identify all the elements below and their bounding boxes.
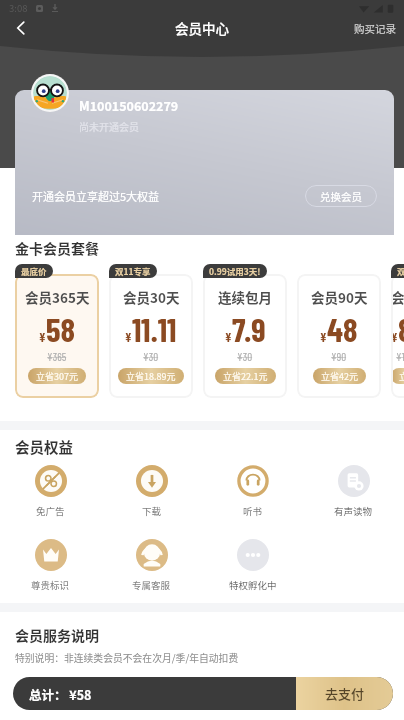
staticText: 会员180天 [391, 287, 404, 307]
button[interactable]: 听书 [202, 465, 303, 518]
staticText: 尊贵标识 [31, 578, 70, 592]
button[interactable]: 会员30天 [109, 274, 193, 398]
staticText: ¥365 [47, 350, 67, 363]
staticText: 立省307元 [36, 370, 78, 383]
staticText: ¥ [320, 329, 327, 344]
staticText: 去支付 [325, 684, 365, 703]
button[interactable]: 会员90天 [297, 274, 381, 398]
staticText: ¥30 [237, 350, 253, 363]
staticText: 听书 [243, 504, 263, 518]
staticText: ¥ [39, 329, 46, 344]
staticText: 会员30天 [123, 287, 180, 307]
staticText: ¥30 [143, 350, 159, 363]
staticText: 免广告 [36, 504, 65, 518]
staticText: 会员90天 [311, 287, 368, 307]
button[interactable]: 会员180天 [391, 274, 404, 398]
staticText: 3:08 [9, 1, 28, 15]
staticText: 立省18.89元 [126, 370, 176, 383]
staticText: 专属客服 [132, 578, 171, 592]
button[interactable]: 购买记录 [343, 15, 404, 42]
staticText: M100150602279 [79, 96, 179, 114]
staticText: 会员服务说明 [15, 625, 99, 645]
button[interactable]: 尊贵标识 [0, 539, 101, 592]
button[interactable]: 专属客服 [101, 539, 202, 592]
staticText: ¥ [391, 329, 398, 344]
button[interactable]: 下载 [101, 465, 202, 518]
staticText: 下载 [142, 504, 162, 518]
staticText: ¥ [125, 329, 132, 344]
staticText: 会员权益 [15, 436, 73, 457]
staticText: 开通会员立享超过5大权益 [32, 188, 160, 204]
button[interactable]: 连续包月 [203, 274, 287, 398]
staticText: 立省22.1元 [223, 370, 268, 383]
staticText: 总计： ¥58 [29, 685, 92, 703]
staticText: 双11专享 [397, 265, 404, 277]
staticText: 立省92元 [399, 370, 404, 383]
button[interactable]: Back [5, 12, 37, 44]
button[interactable]: 特权孵化中 [202, 539, 303, 592]
staticText: 双11专享 [115, 265, 151, 277]
button[interactable]: 有声读物 [303, 465, 404, 518]
staticText: 会员中心 [175, 18, 229, 38]
staticText: 金卡会员套餐 [15, 238, 99, 258]
button[interactable]: 免广告 [0, 465, 101, 518]
button[interactable]: 去支付 [296, 677, 393, 710]
staticText: 7.9 [232, 309, 266, 349]
staticText: 48 [327, 309, 358, 349]
staticText: 11.11 [132, 309, 177, 349]
staticText: 有声读物 [334, 504, 373, 518]
staticText: ¥90 [331, 350, 347, 363]
staticText: 特别说明：非连续类会员不会在次月/季/年自动扣费 [15, 651, 239, 665]
staticText: 会员365天 [25, 287, 90, 307]
button[interactable]: 会员365天 [15, 274, 99, 398]
staticText: 特权孵化中 [229, 578, 277, 592]
staticText: 88 [398, 309, 404, 349]
button[interactable]: 兑换会员 [305, 185, 377, 207]
staticText: 0.99试用3天! [209, 265, 261, 277]
staticText: 尚未开通会员 [79, 119, 139, 133]
staticText: 最底价 [21, 265, 47, 277]
staticText: 58 [46, 309, 76, 349]
staticText: 立省42元 [321, 370, 358, 383]
staticText: 购买记录 [354, 21, 396, 36]
staticText: 连续包月 [218, 287, 272, 307]
staticText: ¥180 [396, 350, 404, 363]
staticText: ¥ [225, 329, 232, 344]
staticText: 兑换会员 [320, 189, 362, 204]
